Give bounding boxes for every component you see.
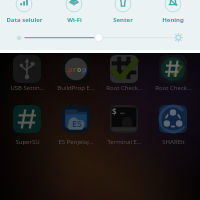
button[interactable] [50, 0, 98, 24]
staticText: BuildProp E… [57, 84, 95, 92]
staticText: Terminal E… [107, 138, 142, 146]
staticText: o [77, 65, 82, 75]
button[interactable]: SuperSU [3, 103, 51, 143]
staticText: SuperSU [15, 138, 40, 146]
staticText: p [82, 65, 87, 75]
staticText: Root Check… [106, 84, 143, 92]
staticText: p [68, 65, 73, 75]
staticText: Data seluler [6, 16, 43, 24]
button[interactable]: USB Settin… [3, 53, 51, 93]
button[interactable] [99, 0, 147, 24]
staticText: $ [112, 106, 117, 117]
button[interactable]: Root Check… [100, 53, 148, 93]
staticText: Senter [113, 16, 133, 24]
staticText: SHAREit [162, 138, 185, 146]
button[interactable]: Root Check… [149, 53, 197, 93]
button[interactable]: Terminal E… [100, 103, 148, 143]
staticText: Hening [162, 16, 184, 24]
staticText: ES Penjelaj… [58, 138, 94, 146]
staticText: ES [72, 117, 82, 129]
staticText: Wi-Fi [67, 16, 82, 24]
staticText: Root Check… [155, 84, 192, 92]
button[interactable] [149, 0, 197, 24]
button[interactable]: SHAREit [149, 103, 197, 143]
staticText: r [73, 65, 77, 75]
staticText: USB Settin… [10, 84, 45, 92]
button[interactable]: BuildProp E… [52, 53, 100, 93]
button[interactable]: ES Penjelaj… [52, 103, 100, 143]
staticText: . [66, 65, 68, 75]
button[interactable] [0, 0, 48, 24]
